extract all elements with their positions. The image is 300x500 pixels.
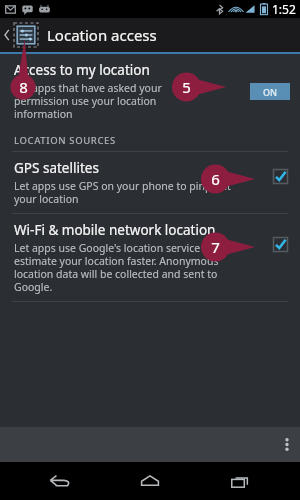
staticText: 5 <box>182 77 191 97</box>
button[interactable]: Wi-Fi & mobile network location checkbox… <box>273 237 288 252</box>
button[interactable]: More options <box>274 427 300 462</box>
staticText: 7 <box>211 237 220 257</box>
staticText: Let apps that have asked your permission… <box>14 81 162 121</box>
staticText: GPS satellites <box>14 159 99 177</box>
button[interactable]: Navigate up <box>0 18 41 52</box>
staticText: Let apps use Google's location service t… <box>14 241 219 294</box>
button[interactable]: GPS satellites <box>0 152 300 213</box>
staticText: 8 <box>19 77 28 97</box>
staticText: Let apps use GPS on your phone to pinpoi… <box>14 179 231 206</box>
staticText: Access to my location <box>14 61 150 79</box>
button[interactable]: GPS satellites checkbox, checked <box>273 169 288 184</box>
staticText: ON <box>263 86 278 98</box>
button[interactable]: Home <box>120 462 180 500</box>
button[interactable]: Back <box>30 462 90 500</box>
staticText: LOCATION SOURCES <box>14 134 116 147</box>
button[interactable]: Wi-Fi & mobile network location <box>0 214 300 301</box>
staticText: Location access <box>47 25 157 45</box>
button[interactable]: Access to my location <box>0 54 300 128</box>
staticText: Wi-Fi & mobile network location <box>14 221 216 239</box>
staticText: 6 <box>211 169 220 189</box>
button[interactable]: Location master switch, on <box>250 83 290 100</box>
button[interactable]: Recent apps <box>210 462 270 500</box>
staticText: 1:52 <box>272 1 296 17</box>
